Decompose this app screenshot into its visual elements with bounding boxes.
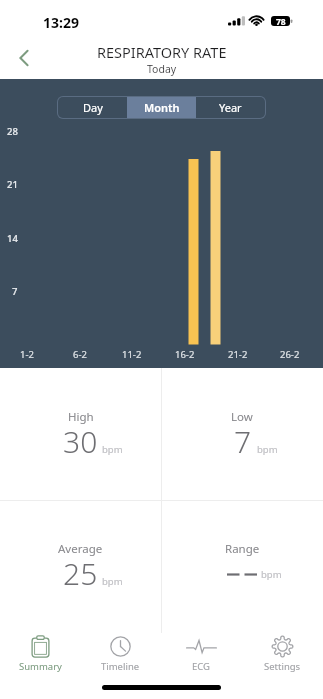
staticText: bpm xyxy=(102,443,123,456)
staticText: 11-2 xyxy=(122,348,142,361)
staticText: 13:29 xyxy=(43,13,79,32)
staticText: Range xyxy=(225,541,260,557)
staticText: 14 xyxy=(7,232,18,244)
button[interactable]: Range xyxy=(161,500,323,633)
staticText: 25 xyxy=(63,553,98,594)
button[interactable]: Summary xyxy=(0,633,80,674)
staticText: Day xyxy=(83,100,103,115)
button[interactable]: Year xyxy=(196,97,265,118)
button[interactable]: Average xyxy=(0,500,161,633)
button[interactable]: Month xyxy=(127,97,196,118)
button[interactable]: Back xyxy=(5,39,43,77)
staticText: 21 xyxy=(7,178,18,190)
staticText: Year xyxy=(219,100,242,115)
staticText: Low xyxy=(231,409,253,425)
staticText: 30 xyxy=(63,421,98,462)
staticText: 28 xyxy=(7,125,18,137)
staticText: 6-2 xyxy=(73,348,87,361)
staticText: Month xyxy=(144,100,180,115)
staticText: High xyxy=(68,409,94,425)
button[interactable]: Low xyxy=(161,368,323,500)
staticText: 26-2 xyxy=(280,348,300,361)
button[interactable]: High xyxy=(0,368,161,500)
staticText: 7 xyxy=(234,421,252,462)
staticText: 7 xyxy=(12,285,18,297)
staticText: 1-2 xyxy=(20,348,34,361)
staticText: RESPIRATORY RATE xyxy=(97,42,227,62)
staticText: bpm xyxy=(257,443,278,456)
staticText: bpm xyxy=(261,568,282,581)
staticText: bpm xyxy=(102,575,123,588)
button[interactable]: ECG xyxy=(161,633,242,674)
staticText: Timeline xyxy=(101,660,140,673)
staticText: 78 xyxy=(276,16,286,26)
staticText: 21-2 xyxy=(228,348,248,361)
staticText: Summary xyxy=(19,660,62,673)
staticText: 16-2 xyxy=(175,348,195,361)
staticText: Settings xyxy=(264,660,301,673)
button[interactable]: Day xyxy=(58,97,127,118)
staticText: ECG xyxy=(192,660,211,673)
staticText: Average xyxy=(58,541,103,557)
button[interactable]: Timeline xyxy=(80,633,161,674)
button[interactable]: Settings xyxy=(242,633,323,674)
staticText: Today xyxy=(147,62,177,76)
